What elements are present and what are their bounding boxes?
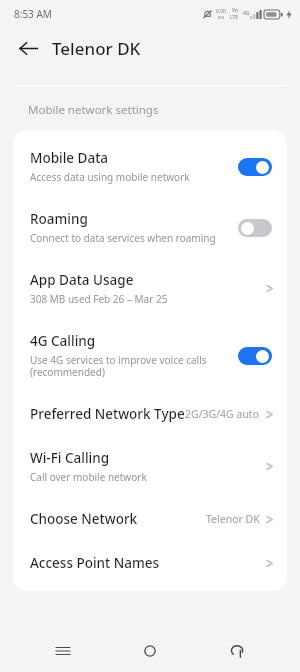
button[interactable]: Wi-Fi Calling — [13, 436, 287, 497]
button[interactable]: Roaming — [13, 197, 287, 258]
staticText: 308 MB used Feb 26 – Mar 25 — [30, 292, 168, 306]
staticText: B/S — [218, 15, 225, 20]
staticText: Mobile Data — [30, 149, 109, 167]
button[interactable]: Recent apps — [39, 630, 87, 672]
staticText: Wi-Fi Calling — [30, 449, 110, 467]
button[interactable]: Preferred Network Type — [13, 392, 287, 436]
button[interactable]: Access Point Names — [13, 541, 287, 585]
staticText: 4G — [243, 10, 250, 17]
staticText: Access data using mobile network — [30, 170, 190, 184]
staticText: 8:53 AM — [14, 7, 52, 21]
staticText: 2G/3G/4G auto — [185, 407, 260, 421]
staticText: Access Point Names — [30, 554, 160, 572]
staticText: 4G Calling — [30, 332, 96, 350]
staticText: Connect to data services when roaming — [30, 231, 216, 245]
staticText: Vo — [232, 7, 238, 14]
staticText: Use 4G services to improve voice calls (… — [30, 353, 207, 379]
staticText: Telenor DK — [52, 37, 141, 60]
button[interactable]: App Data Usage — [13, 258, 287, 319]
staticText: LTE — [230, 14, 239, 21]
button[interactable]: 4G Calling — [13, 319, 287, 392]
staticText: Roaming — [30, 210, 88, 228]
button[interactable]: On — [238, 347, 272, 365]
staticText: Telenor DK — [206, 512, 260, 526]
staticText: App Data Usage — [30, 271, 134, 289]
button[interactable]: Choose Network — [13, 497, 287, 541]
staticText: 0.00 — [216, 8, 226, 15]
staticText: Mobile network settings — [28, 102, 159, 118]
button[interactable]: Mobile Data — [13, 136, 287, 197]
button[interactable]: Back — [8, 28, 48, 68]
staticText: Preferred Network Type — [30, 405, 185, 423]
button[interactable]: Off — [238, 219, 272, 237]
staticText: Choose Network — [30, 510, 138, 528]
button[interactable]: Home — [126, 630, 174, 672]
button[interactable]: Back — [213, 630, 261, 672]
button[interactable]: On — [238, 158, 272, 176]
staticText: Call over mobile network — [30, 470, 147, 484]
